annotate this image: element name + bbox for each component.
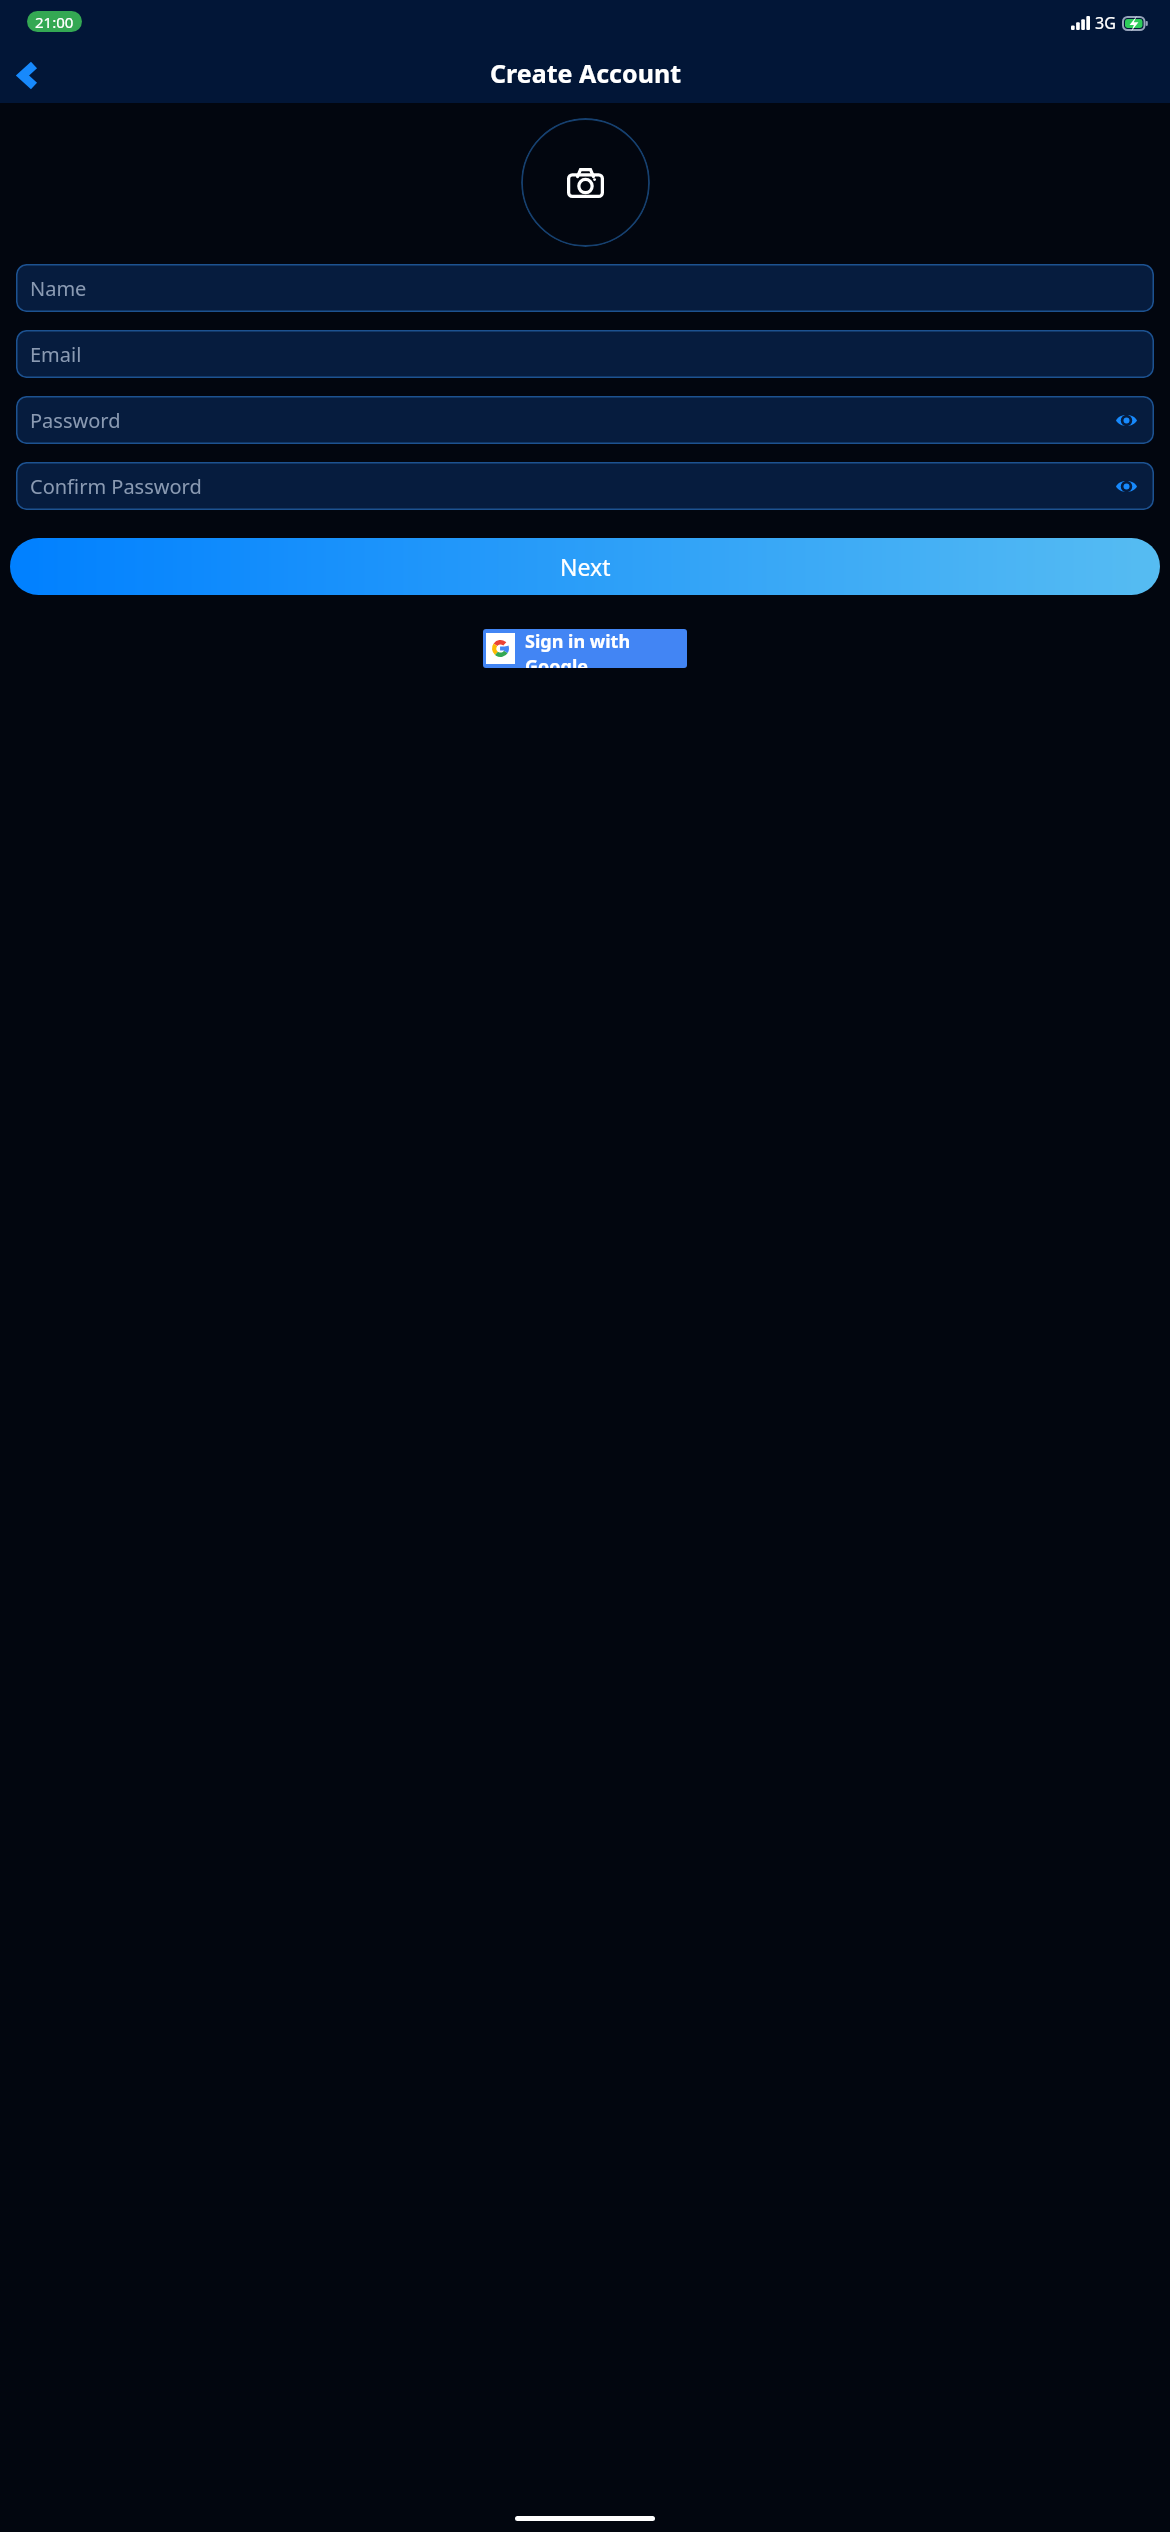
button[interactable]: Show password: [1111, 471, 1141, 501]
staticText: Email: [30, 341, 82, 368]
button[interactable]: Show password: [1111, 405, 1141, 435]
button[interactable]: Name: [16, 264, 1154, 312]
button[interactable]: Sign in with Google: [483, 629, 687, 668]
staticText: 21:00: [35, 12, 74, 32]
button[interactable]: Password: [16, 396, 1154, 444]
staticText: 3G: [1095, 12, 1116, 34]
button[interactable]: Add profile photo: [521, 118, 650, 247]
staticText: Password: [30, 407, 121, 434]
staticText: Sign in with Google: [525, 629, 687, 668]
button[interactable]: Email: [16, 330, 1154, 378]
staticText: Confirm Password: [30, 473, 202, 500]
button[interactable]: Next: [10, 538, 1160, 595]
button[interactable]: Confirm Password: [16, 462, 1154, 510]
staticText: Next: [560, 551, 611, 582]
staticText: Name: [30, 275, 87, 302]
staticText: Create Account: [490, 56, 681, 90]
button[interactable]: Back: [8, 56, 46, 94]
